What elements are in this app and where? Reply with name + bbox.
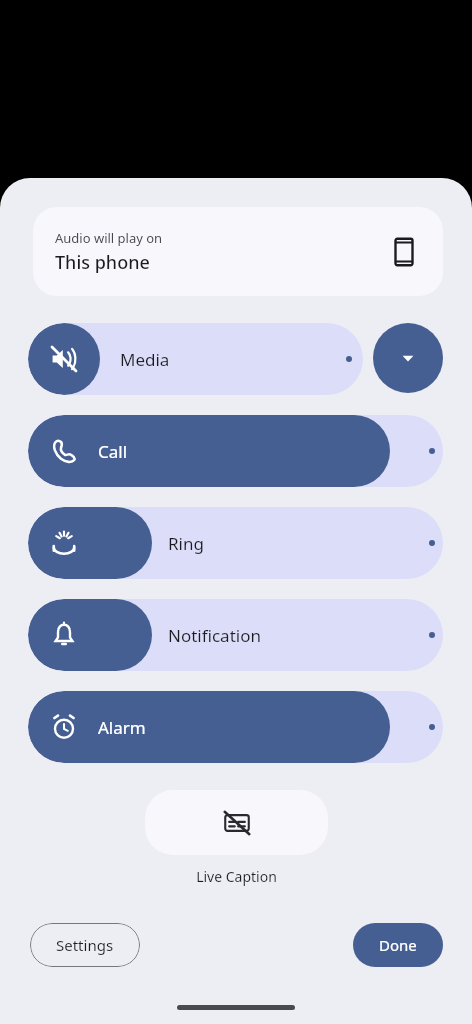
button[interactable]: Live Caption toggle	[145, 790, 328, 855]
staticText: Notification	[168, 624, 261, 647]
button[interactable]: Ring volume	[28, 507, 443, 579]
staticText: Alarm	[98, 716, 146, 739]
other: Output device: phone	[387, 235, 421, 269]
staticText: Settings	[56, 935, 114, 955]
staticText: This phone	[55, 250, 150, 275]
button[interactable]: Call volume	[28, 415, 443, 487]
staticText: Ring	[168, 532, 204, 555]
button[interactable]: Expand media output	[373, 323, 443, 393]
staticText: Audio will play on	[55, 229, 163, 247]
button[interactable]: Done	[353, 923, 443, 967]
button[interactable]: Audio will play on	[33, 207, 443, 296]
staticText: Call	[98, 440, 128, 463]
button[interactable]: Media volume	[28, 323, 363, 395]
staticText: Media	[120, 348, 170, 371]
button[interactable]: Alarm volume	[28, 691, 443, 763]
staticText: Done	[379, 935, 417, 955]
button[interactable]: Settings	[30, 923, 140, 967]
button[interactable]: Notification volume	[28, 599, 443, 671]
staticText: Live Caption	[196, 867, 277, 886]
